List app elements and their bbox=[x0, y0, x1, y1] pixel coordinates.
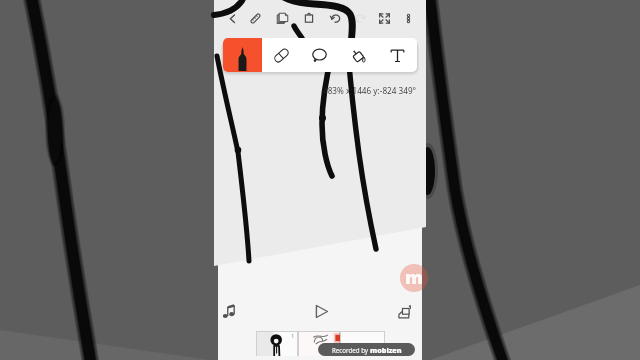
button[interactable]: Layers bbox=[392, 298, 418, 324]
button[interactable]: Mobizen recorder bbox=[400, 264, 428, 292]
button[interactable]: Frame 3 bbox=[341, 332, 384, 356]
staticText: m bbox=[405, 265, 423, 290]
button[interactable]: Back bbox=[221, 4, 243, 32]
button[interactable]: Ruler bbox=[244, 4, 266, 32]
button[interactable]: Text bbox=[378, 38, 417, 72]
button[interactable]: Paste bbox=[298, 4, 320, 32]
button[interactable]: Copy bbox=[271, 4, 293, 32]
button[interactable]: Eraser bbox=[262, 38, 300, 72]
staticText: 483% x:1446 y:-824 349° bbox=[323, 85, 417, 96]
button[interactable]: More options bbox=[397, 4, 419, 32]
button[interactable]: Lasso select bbox=[300, 38, 339, 72]
button[interactable]: Frame 2 bbox=[299, 332, 339, 356]
staticText: Recorded by bbox=[332, 346, 370, 354]
button[interactable]: Play bbox=[306, 296, 336, 326]
button[interactable]: Fill bbox=[339, 38, 378, 72]
button[interactable]: Undo bbox=[324, 4, 346, 32]
button[interactable]: Audio bbox=[215, 298, 241, 324]
staticText: 1 bbox=[291, 332, 295, 340]
button[interactable]: Frame 1 bbox=[257, 332, 297, 356]
button[interactable]: Fullscreen bbox=[373, 4, 395, 32]
button[interactable]: Pen tool bbox=[223, 38, 262, 72]
staticText: mobizen bbox=[370, 345, 402, 355]
button[interactable]: Redo bbox=[349, 4, 371, 32]
